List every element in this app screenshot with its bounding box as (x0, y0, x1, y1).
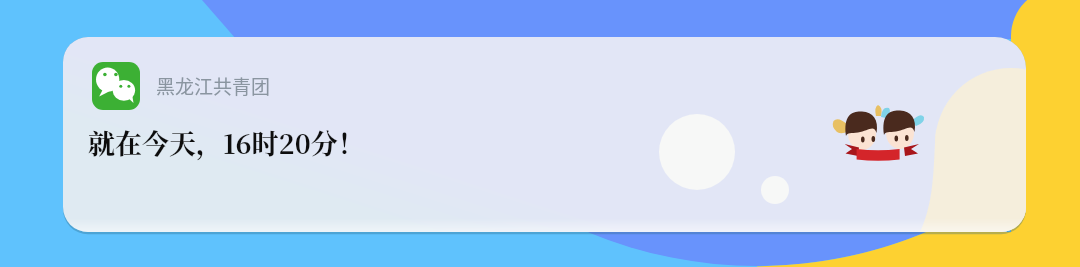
staticText: 就在今天，16时20分！ (88, 123, 365, 162)
button[interactable]: WeChat official account (92, 62, 271, 110)
other: WeChat official account (92, 62, 140, 110)
staticText: 黑龙江共青团 (156, 72, 271, 100)
other: WeChat article banner (0, 0, 1080, 267)
button[interactable]: WeChat official account (63, 37, 1026, 232)
